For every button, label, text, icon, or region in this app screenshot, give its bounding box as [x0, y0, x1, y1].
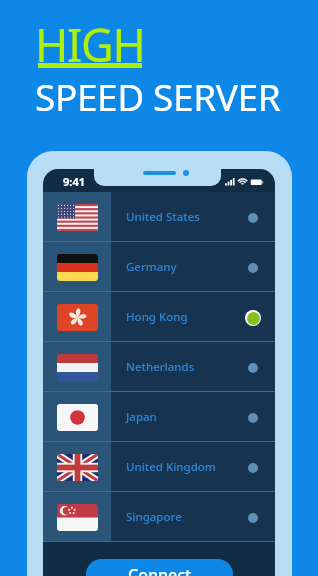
staticText: SPEED SERVER: [35, 71, 281, 121]
staticText: 9:41: [63, 174, 85, 189]
staticText: HIGH: [35, 14, 145, 75]
button[interactable]: Netherlands: [43, 342, 275, 392]
button[interactable]: Connect: [86, 559, 233, 576]
staticText: Germany: [126, 259, 177, 275]
button[interactable]: Hong Kong: [43, 292, 275, 342]
button[interactable]: Japan: [43, 392, 275, 442]
staticText: United Kingdom: [126, 459, 216, 475]
button[interactable]: United States: [43, 192, 275, 242]
button[interactable]: Singapore: [43, 492, 275, 542]
staticText: Singapore: [126, 509, 182, 525]
staticText: Connect: [128, 564, 192, 576]
button[interactable]: United Kingdom: [43, 442, 275, 492]
staticText: Hong Kong: [126, 309, 188, 325]
button[interactable]: Germany: [43, 242, 275, 292]
staticText: United States: [126, 209, 200, 225]
staticText: Japan: [126, 409, 157, 425]
staticText: Netherlands: [126, 359, 195, 375]
